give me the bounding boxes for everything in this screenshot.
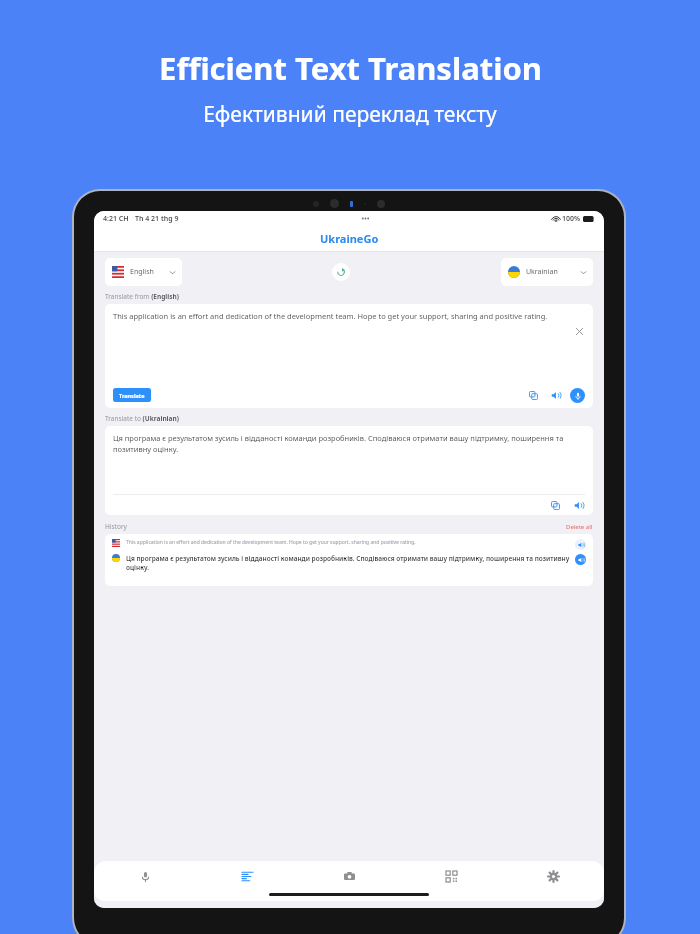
- staticText: Ця програма є результатом зусиль і відда…: [126, 554, 570, 572]
- button[interactable]: Camera: [298, 861, 400, 891]
- staticText: This application is an effort and dedica…: [113, 311, 569, 321]
- button[interactable]: Scan QR: [400, 861, 502, 891]
- button[interactable]: English: [105, 258, 182, 286]
- staticText: 100%: [562, 214, 581, 224]
- button[interactable]: Speak translation: [571, 498, 585, 512]
- staticText: UkraineGo: [320, 231, 379, 246]
- staticText: 4:21 CH: [103, 214, 129, 224]
- button[interactable]: Copy translation: [548, 498, 562, 512]
- staticText: Translate to (Ukrainian): [105, 414, 179, 423]
- button[interactable]: Delete all: [566, 523, 593, 531]
- button[interactable]: Translate: [113, 388, 151, 402]
- staticText: Translate: [119, 392, 145, 399]
- button[interactable]: Ukrainian: [501, 258, 593, 286]
- button[interactable]: This application is an effort and dedica…: [105, 534, 593, 586]
- staticText: This application is an effort and dedica…: [126, 539, 570, 546]
- staticText: Ця програма є результатом зусиль і відда…: [113, 433, 585, 454]
- staticText: English: [130, 267, 154, 277]
- staticText: Ukrainian: [526, 267, 558, 277]
- staticText: Translate from (English): [105, 292, 179, 301]
- button[interactable]: Settings: [502, 861, 604, 891]
- button[interactable]: Text translate: [196, 861, 298, 891]
- button[interactable]: Voice: [94, 861, 196, 891]
- button[interactable]: Voice input: [570, 388, 585, 403]
- staticText: Th 4 21 thg 9: [135, 214, 179, 224]
- staticText: Delete all: [566, 523, 593, 531]
- staticText: Ефективний переклад тексту: [203, 100, 497, 129]
- button[interactable]: Swap languages: [332, 263, 350, 281]
- staticText: History: [105, 522, 127, 531]
- staticText: Efficient Text Translation: [159, 47, 542, 89]
- button[interactable]: Clear: [573, 325, 585, 337]
- button[interactable]: Copy: [526, 388, 540, 402]
- button[interactable]: Play source: [575, 539, 586, 550]
- button[interactable]: Play translation: [575, 554, 586, 565]
- button[interactable]: Speak: [548, 388, 562, 402]
